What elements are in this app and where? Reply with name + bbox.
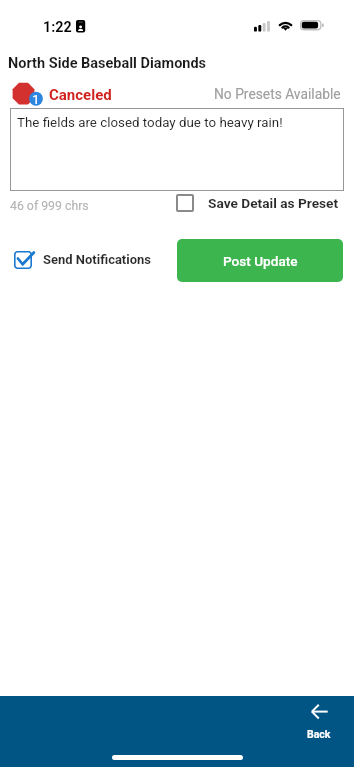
- button[interactable]: Post Update: [177, 239, 343, 282]
- staticText: Back: [307, 728, 331, 740]
- button[interactable]: Send Notifications: [14, 248, 152, 267]
- staticText: Canceled: [49, 86, 112, 104]
- staticText: The fields are closed today due to heavy…: [17, 115, 283, 131]
- staticText: 1:22: [43, 19, 72, 36]
- staticText: Post Update: [223, 253, 298, 269]
- button[interactable]: The fields are closed today due to heavy…: [10, 108, 344, 191]
- staticText: North Side Baseball Diamonds: [8, 55, 207, 72]
- staticText: Save Detail as Preset: [208, 195, 339, 211]
- staticText: Send Notifications: [43, 252, 152, 267]
- button[interactable]: Save Detail as Preset: [176, 194, 339, 212]
- staticText: No Presets Available: [214, 86, 341, 102]
- staticText: 46 of 999 chrs: [10, 199, 89, 213]
- button[interactable]: Back: [303, 704, 335, 740]
- staticText: 1: [32, 91, 40, 107]
